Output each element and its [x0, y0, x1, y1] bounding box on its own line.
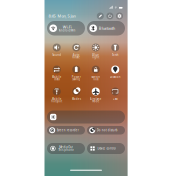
- button[interactable]: Wi-Fi: [47, 21, 85, 35]
- staticText: rotate: [72, 55, 80, 59]
- button[interactable]: Cast: [105, 87, 125, 109]
- staticText: Sound: [52, 53, 61, 57]
- button[interactable]: Brightness: [47, 110, 125, 123]
- button[interactable]: Screen: [86, 65, 105, 87]
- staticText: data: [54, 77, 59, 81]
- button[interactable]: Media Out: [47, 143, 85, 154]
- staticText: mode: [92, 99, 100, 103]
- staticText: Wi-Fi: [63, 24, 72, 29]
- staticText: Power: [72, 75, 81, 79]
- staticText: Auto: [73, 53, 80, 57]
- button[interactable]: Auto: [66, 43, 86, 65]
- staticText: Torch: [112, 53, 119, 57]
- button[interactable]: Bluetooth: [87, 21, 125, 35]
- staticText: AndroidWifi: [59, 29, 76, 32]
- staticText: Bluetooth: [99, 26, 115, 31]
- staticText: 8:45 Mon, 5 Jan: [48, 13, 75, 19]
- button[interactable]: Mobile: [47, 87, 66, 109]
- staticText: Mobile: [52, 75, 62, 79]
- staticText: Screen: [91, 75, 100, 79]
- staticText: Location: [110, 75, 121, 79]
- button[interactable]: Mobile: [47, 65, 66, 87]
- button[interactable]: Torch: [105, 43, 125, 65]
- staticText: Cast: [113, 97, 118, 101]
- button[interactable]: Do not disturb: [87, 126, 125, 134]
- staticText: hotspot: [51, 99, 62, 103]
- staticText: saving: [72, 77, 80, 81]
- staticText: Do not disturb: [97, 128, 118, 132]
- staticText: Media Out: [59, 145, 73, 149]
- button[interactable]: Screen recorder: [47, 126, 85, 134]
- button[interactable]: Blue: [86, 43, 105, 65]
- staticText: Modes: [72, 97, 81, 101]
- button[interactable]: Modes: [66, 87, 86, 109]
- button[interactable]: Airplane: [86, 87, 105, 109]
- button[interactable]: Device control: [87, 143, 125, 154]
- staticText: Airplane: [90, 97, 102, 101]
- staticText: Device control: [97, 147, 116, 150]
- button[interactable]: Power: [106, 12, 113, 19]
- button[interactable]: Location: [105, 65, 125, 87]
- staticText: Mobile: [52, 97, 62, 101]
- button[interactable]: Settings: [116, 12, 123, 19]
- staticText: Blue: [92, 53, 99, 57]
- button[interactable]: Sound: [47, 43, 66, 65]
- button[interactable]: Power: [66, 65, 86, 87]
- staticText: This phone: [58, 148, 74, 152]
- staticText: lock: [93, 77, 98, 81]
- staticText: Screen recorder: [57, 128, 79, 132]
- button[interactable]: Edit: [97, 12, 104, 19]
- staticText: light: [92, 55, 99, 59]
